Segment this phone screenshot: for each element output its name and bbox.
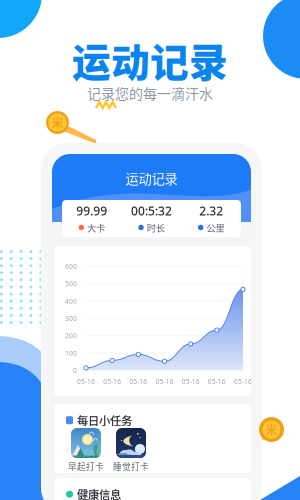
staticText: 健康信息 [77, 486, 121, 500]
staticText: 05-16 [234, 377, 252, 386]
staticText: 05-16 [129, 377, 147, 386]
button[interactable]: 睡觉打卡 [113, 428, 149, 472]
staticText: 05-16 [208, 377, 226, 386]
staticText: 400 [65, 297, 77, 306]
staticText: 05-16 [77, 377, 95, 386]
staticText: 200 [65, 331, 77, 340]
staticText: 300 [65, 314, 77, 323]
staticText: 05-16 [155, 377, 173, 386]
staticText: 2.32 [199, 203, 223, 219]
staticText: 米 [265, 421, 277, 438]
staticText: 600 [65, 262, 77, 271]
staticText: 记录您的每一滴汗水 [87, 83, 213, 103]
staticText: 99.99 [76, 203, 107, 219]
button[interactable]: 早起打卡 [68, 428, 104, 472]
staticText: 每日小任务 [77, 412, 132, 428]
staticText: 时长 [147, 221, 165, 234]
staticText: 0 [73, 366, 77, 375]
staticText: 运动记录 [125, 168, 177, 188]
staticText: 公里 [206, 221, 224, 234]
staticText: 运动记录 [72, 32, 228, 88]
staticText: 500 [65, 279, 77, 288]
staticText: 米 [51, 114, 63, 131]
staticText: 早起打卡 [68, 460, 104, 472]
staticText: 100 [65, 349, 77, 358]
button[interactable]: 运动记录 [52, 168, 251, 188]
staticText: 05-16 [103, 377, 121, 386]
staticText: 睡觉打卡 [113, 460, 149, 472]
staticText: 05-16 [182, 377, 200, 386]
staticText: 00:5:32 [131, 203, 172, 219]
staticText: 大卡 [87, 221, 105, 234]
